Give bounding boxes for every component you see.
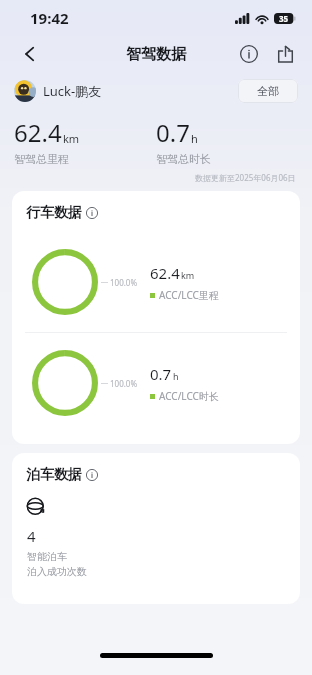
staticText: 智驾总时长 — [156, 152, 211, 166]
staticText: 62.4 — [150, 263, 180, 283]
staticText: 0.7 — [156, 116, 190, 149]
staticText: 智驾总里程 — [14, 152, 69, 166]
staticText: 100.0% — [110, 277, 138, 288]
staticText: 泊入成功次数 — [27, 565, 87, 578]
staticText: 35 — [279, 13, 289, 24]
button[interactable]: 全部 — [238, 79, 298, 103]
staticText: 智驾数据 — [126, 45, 186, 64]
staticText: 数据更新至2025年06月06日 — [195, 172, 296, 183]
staticText: h — [173, 370, 179, 382]
staticText: km — [63, 131, 80, 146]
staticText: 62.4 — [14, 116, 62, 149]
staticText: 0.7 — [150, 364, 172, 384]
staticText: Luck-鹏友 — [43, 82, 102, 100]
button[interactable]: 泊车数据 — [26, 466, 98, 484]
staticText: 4 — [27, 526, 36, 546]
staticText: 100.0% — [110, 378, 138, 389]
button[interactable]: Info — [234, 39, 264, 69]
staticText: km — [181, 269, 195, 281]
button[interactable]: Back — [14, 39, 44, 69]
staticText: ACC/LCC时长 — [159, 389, 219, 403]
staticText: 全部 — [257, 84, 279, 98]
staticText: 19:42 — [30, 8, 69, 28]
staticText: 智能泊车 — [27, 550, 67, 563]
button[interactable]: Share — [270, 39, 300, 69]
button[interactable]: Luck-鹏友 — [14, 80, 102, 102]
staticText: ACC/LCC里程 — [159, 288, 219, 302]
staticText: 泊车数据 — [26, 466, 82, 484]
staticText: 行车数据 — [26, 204, 82, 222]
button[interactable]: 行车数据 — [26, 204, 98, 222]
staticText: h — [191, 131, 198, 146]
